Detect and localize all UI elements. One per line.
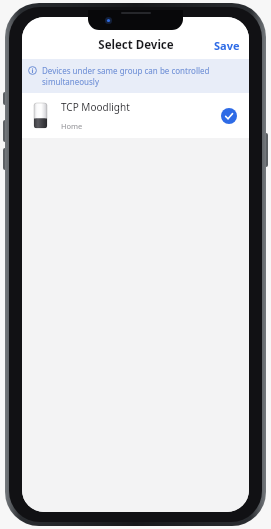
button[interactable]: Selected xyxy=(221,108,237,124)
button[interactable]: TCP Moodlight xyxy=(22,93,249,138)
staticText: Save xyxy=(214,38,240,53)
staticText: TCP Moodlight xyxy=(61,100,130,114)
staticText: Devices under same group can be controll… xyxy=(42,65,239,87)
staticText: Select Device xyxy=(98,37,174,53)
button[interactable]: Save xyxy=(205,33,249,58)
staticText: Home xyxy=(61,121,83,131)
